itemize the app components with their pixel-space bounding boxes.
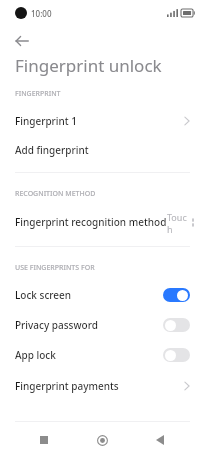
- button[interactable]: Privacy password: [0, 314, 205, 336]
- button[interactable]: Home: [87, 425, 117, 455]
- staticText: Privacy password: [15, 318, 98, 332]
- button[interactable]: App lock: [0, 344, 205, 366]
- staticText: Fingerprint 1: [15, 114, 77, 128]
- staticText: Fingerprint unlock: [15, 54, 162, 77]
- button[interactable]: Add fingerprint: [0, 139, 205, 161]
- button[interactable]: Fingerprint 1: [0, 110, 205, 132]
- staticText: Lock screen: [15, 288, 72, 302]
- staticText: Fingerprint payments: [15, 379, 119, 393]
- button[interactable]: Back: [7, 26, 37, 56]
- button[interactable]: Lock screen: [0, 284, 205, 306]
- button[interactable]: Back: [145, 425, 175, 455]
- button[interactable]: Fingerprint payments: [0, 375, 205, 397]
- staticText: USE FINGERPRINTS FOR: [15, 263, 95, 273]
- staticText: FINGERPRINT: [15, 89, 61, 99]
- staticText: Add fingerprint: [15, 143, 89, 157]
- staticText: 10:00: [31, 8, 52, 19]
- staticText: RECOGNITION METHOD: [15, 189, 96, 199]
- staticText: Touch: [167, 211, 190, 233]
- staticText: App lock: [15, 348, 56, 362]
- staticText: Fingerprint recognition method: [15, 215, 167, 229]
- button[interactable]: Fingerprint recognition method: [0, 211, 205, 233]
- button[interactable]: Recents: [29, 425, 59, 455]
